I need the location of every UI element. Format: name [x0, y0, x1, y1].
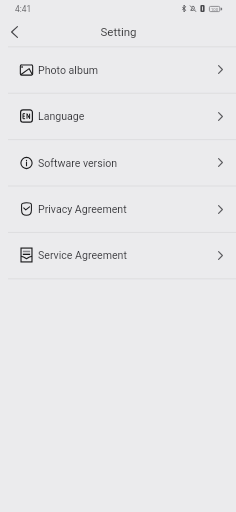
button[interactable]: Language	[0, 93, 236, 139]
staticText: Software version	[38, 157, 118, 169]
staticText: Setting	[100, 25, 137, 38]
button[interactable]: Photo album	[0, 46, 236, 93]
staticText: Service Agreement	[38, 249, 127, 261]
staticText: Privacy Agreement	[38, 203, 127, 215]
button[interactable]: Software version	[0, 139, 236, 186]
staticText: Language	[38, 110, 85, 122]
staticText: 100	[211, 7, 219, 12]
staticText: 4:41	[15, 4, 32, 14]
button[interactable]: Privacy Agreement	[0, 186, 236, 232]
staticText: Photo album	[38, 64, 99, 76]
button[interactable]: Service Agreement	[0, 232, 236, 278]
button[interactable]: Back	[0, 18, 28, 46]
